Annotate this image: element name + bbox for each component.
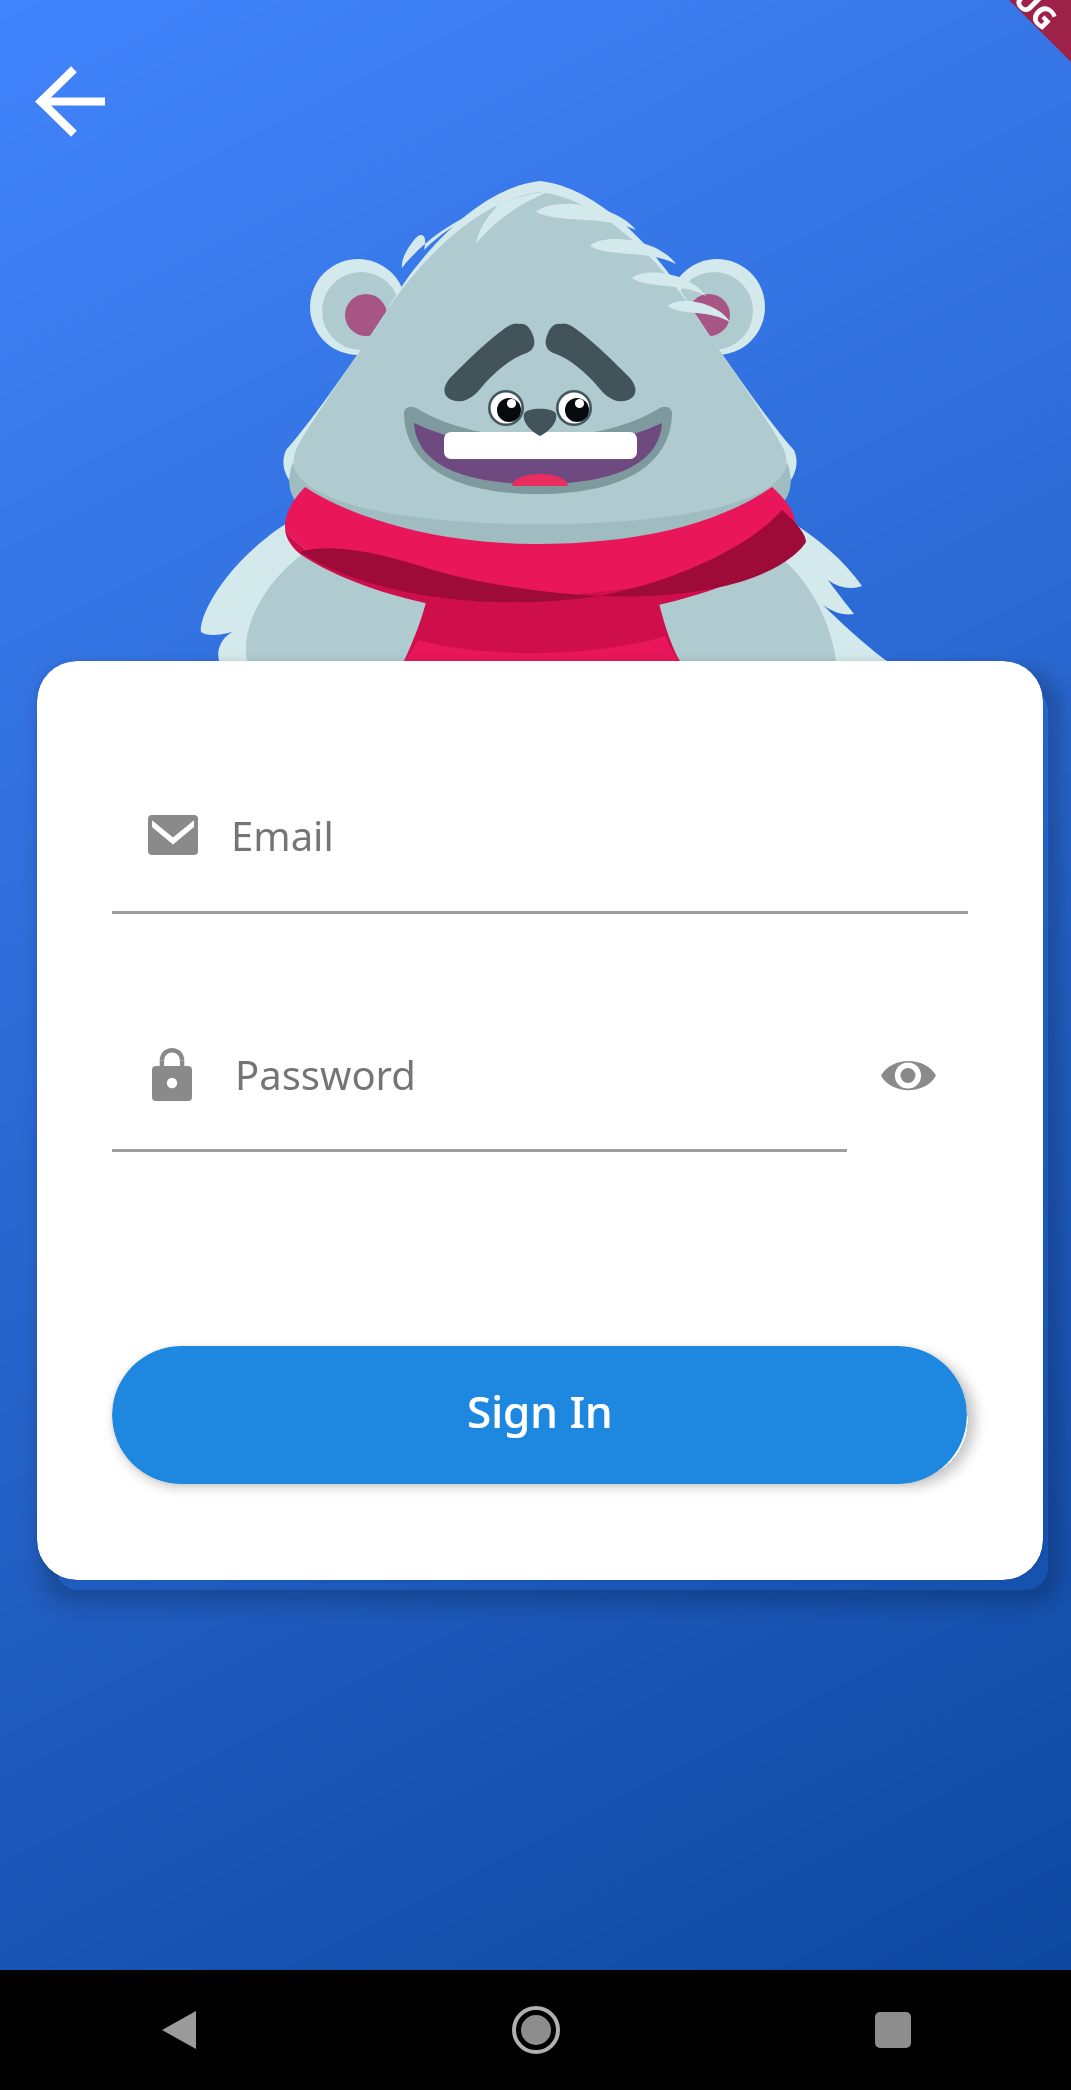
staticText: Password [235, 1047, 416, 1101]
button[interactable]: Password [152, 1022, 1012, 1126]
button[interactable]: Show password [856, 1033, 960, 1117]
button[interactable]: Email [148, 785, 1012, 885]
button[interactable]: Home [357, 1970, 714, 2090]
button[interactable]: Back [18, 49, 123, 154]
button[interactable]: Back [0, 1970, 357, 2090]
button[interactable]: Sign In [112, 1346, 967, 1484]
staticText: Email [231, 808, 334, 862]
button[interactable]: Recents [714, 1970, 1071, 2090]
staticText: Sign In [467, 1381, 613, 1441]
